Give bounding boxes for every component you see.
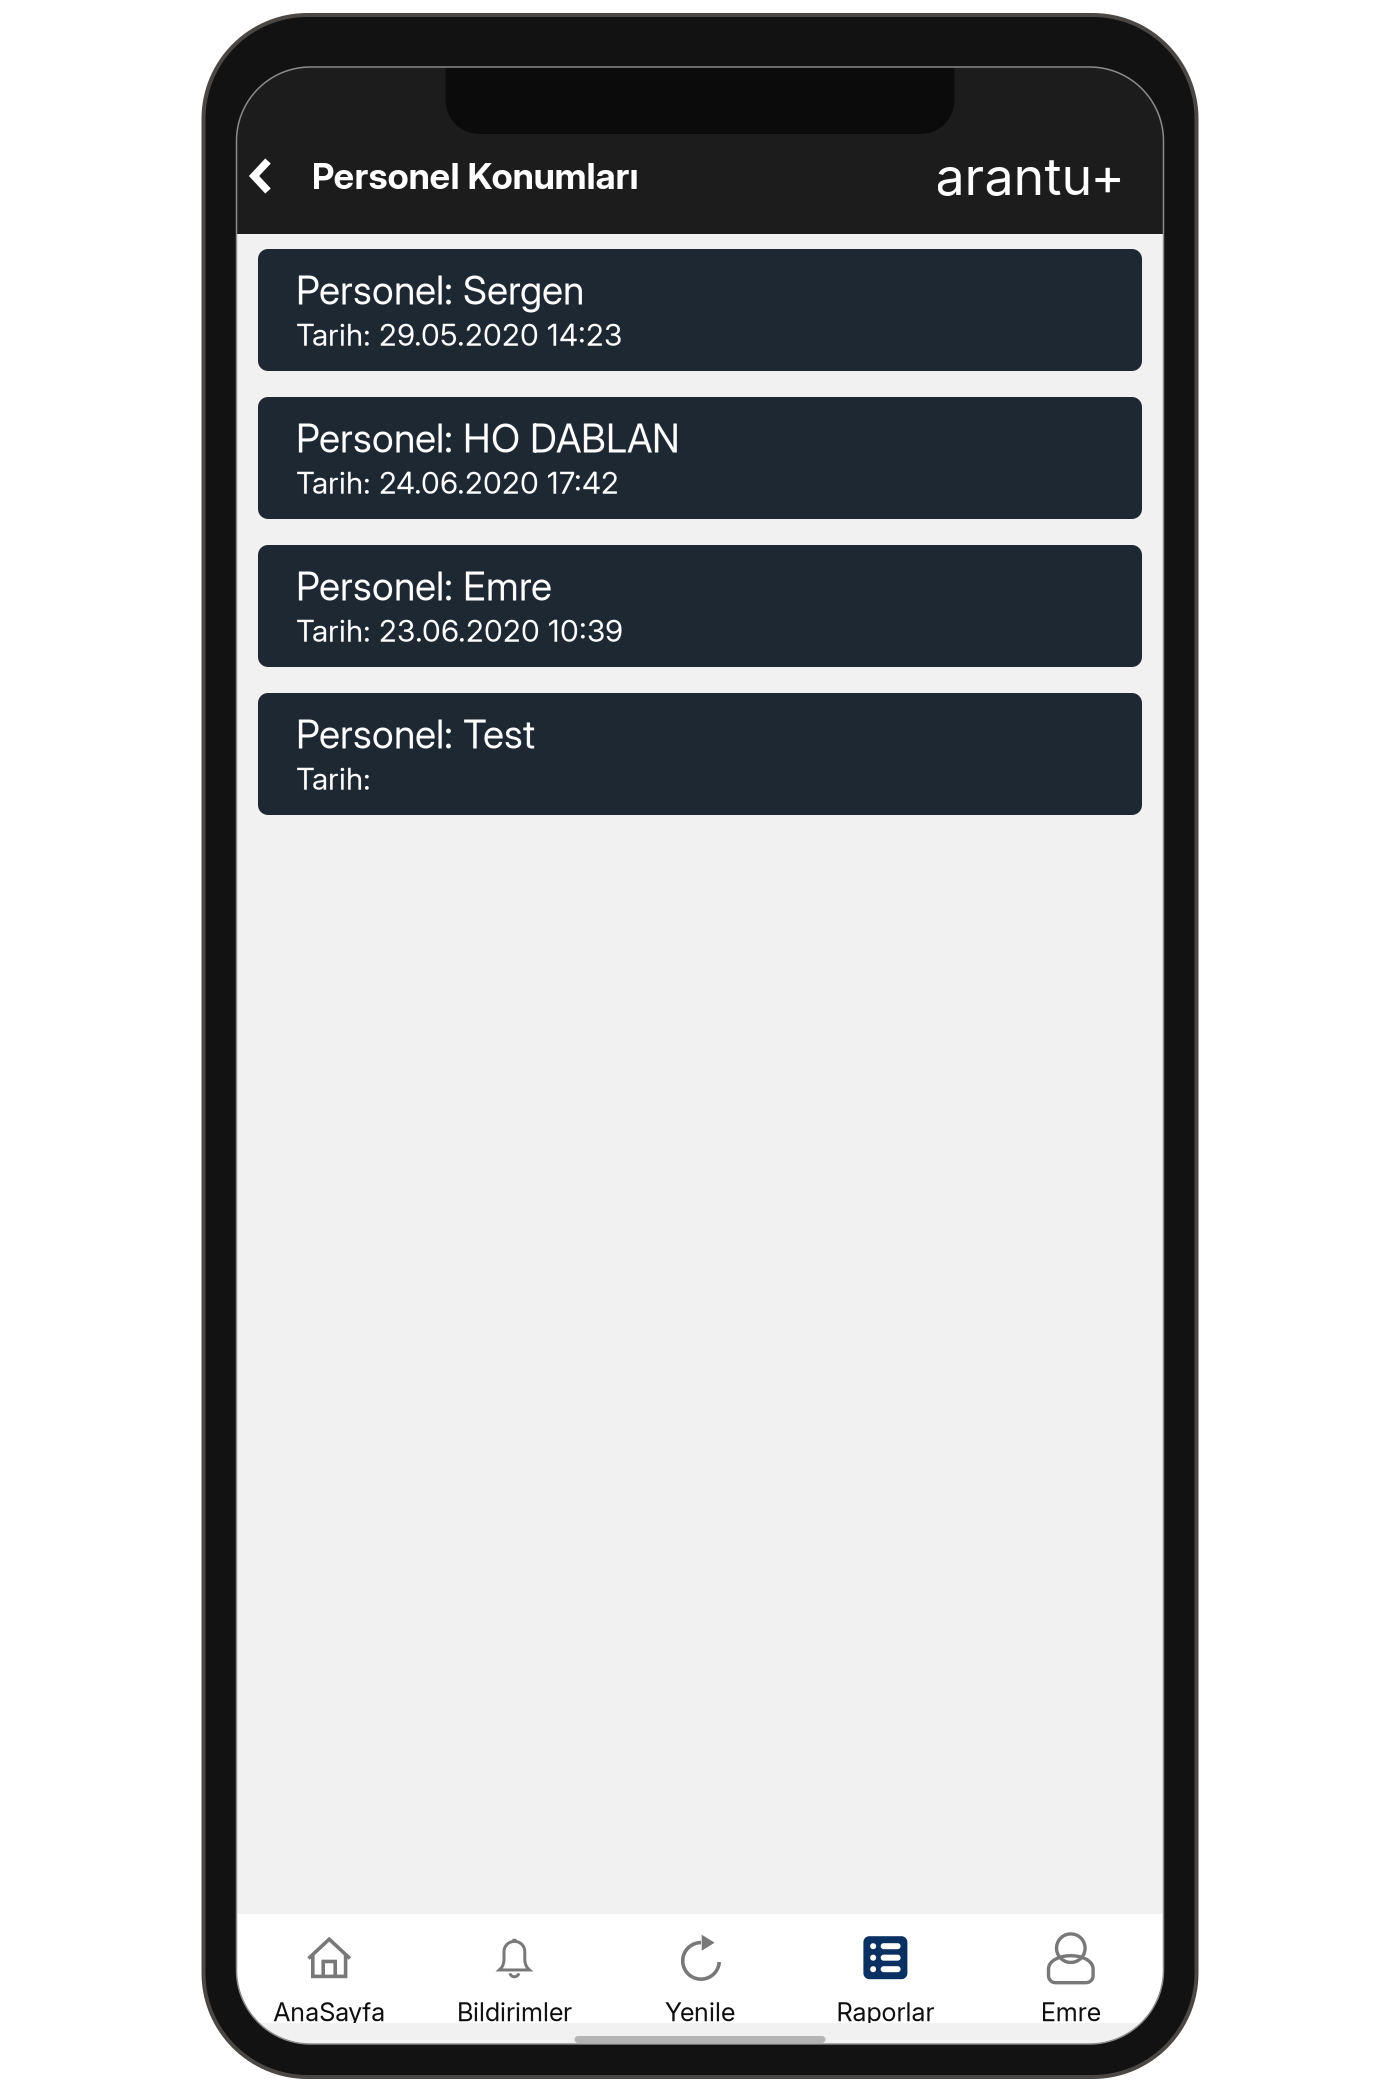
button[interactable]: Yenile [607,1914,793,2023]
staticText: Personel: Emre [296,563,552,610]
staticText: Bildirimler [457,1997,572,2027]
staticText: Personel: Sergen [296,267,584,314]
button[interactable]: arantu+ [935,134,1124,218]
staticText: Personel: Test [296,711,535,758]
staticText: Emre [1041,1997,1101,2027]
button[interactable]: Bildirimler [422,1914,607,2023]
staticText: Tarih: 24.06.2020 17:42 [296,465,619,501]
staticText: Yenile [665,1997,735,2027]
button[interactable]: Back [236,134,285,218]
button[interactable]: AnaSayfa [236,1914,422,2023]
button[interactable]: Personel: Emre [258,545,1142,667]
staticText: Tarih: 29.05.2020 14:23 [296,317,622,353]
button[interactable]: Raporlar [793,1914,978,2023]
staticText: Raporlar [836,1997,934,2027]
button[interactable]: Personel: Sergen [258,249,1142,371]
button[interactable]: Emre [978,1914,1163,2023]
button[interactable]: Personel: Test [258,693,1142,815]
button[interactable]: Personel: HO DABLAN [258,397,1142,519]
staticText: arantu+ [935,144,1124,207]
staticText: Personel: HO DABLAN [296,415,680,462]
staticText: AnaSayfa [273,1997,385,2027]
staticText: Tarih: [296,761,379,797]
staticText: Tarih: 23.06.2020 10:39 [296,613,623,649]
staticText: Personel Konumları [311,154,638,198]
